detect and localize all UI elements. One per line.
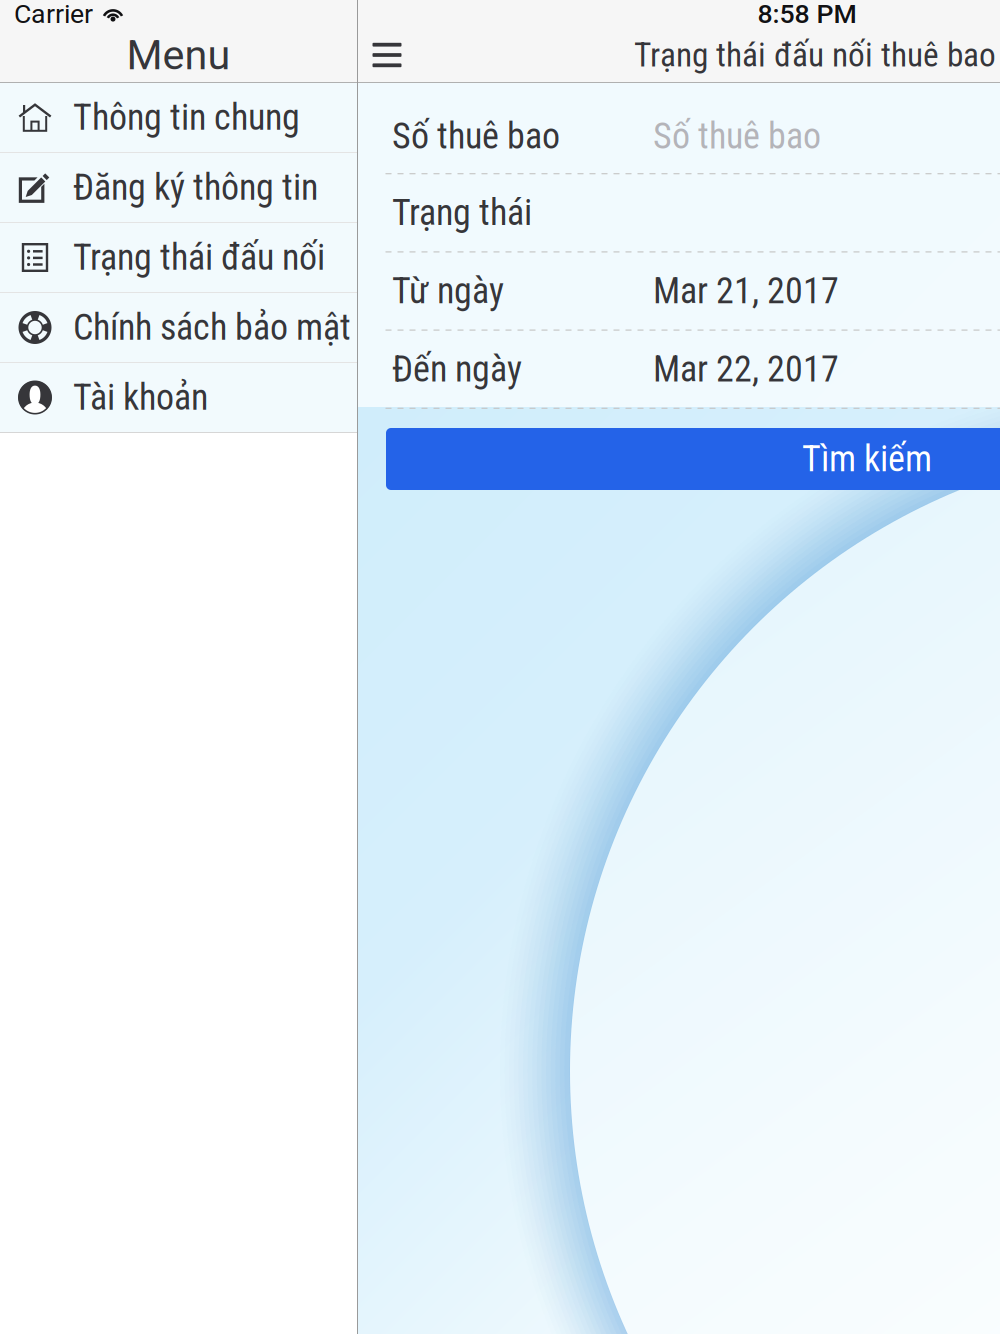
staticText: 8:58 PM: [757, 0, 856, 30]
staticText: Từ ngày: [392, 270, 504, 312]
staticText: Đến ngày: [392, 348, 522, 390]
staticText: Số thuê bao: [653, 115, 821, 157]
staticText: Mar 21, 2017: [653, 270, 839, 312]
button[interactable]: Thông tin chung: [0, 83, 357, 152]
staticText: Đăng ký thông tin: [73, 166, 318, 209]
staticText: Trạng thái đấu nối thuê bao: [634, 35, 996, 75]
staticText: Thông tin chung: [73, 96, 300, 139]
staticText: Tài khoản: [73, 376, 208, 419]
button[interactable]: Chính sách bảo mật: [0, 293, 357, 362]
staticText: Số thuê bao: [392, 115, 560, 157]
staticText: Chính sách bảo mật: [73, 306, 351, 349]
staticText: Menu: [126, 31, 230, 79]
staticText: Trạng thái đấu nối: [73, 236, 325, 279]
staticText: Mar 22, 2017: [653, 348, 839, 390]
staticText: Trạng thái: [392, 192, 532, 234]
button[interactable]: Trạng thái đấu nối: [0, 223, 357, 292]
button[interactable]: Tìm kiếm: [386, 428, 1000, 490]
button[interactable]: Tài khoản: [0, 363, 357, 432]
staticText: Tìm kiếm: [802, 438, 932, 480]
staticText: Carrier: [14, 0, 93, 30]
button[interactable]: Đăng ký thông tin: [0, 153, 357, 222]
button[interactable]: Menu: [358, 28, 416, 82]
